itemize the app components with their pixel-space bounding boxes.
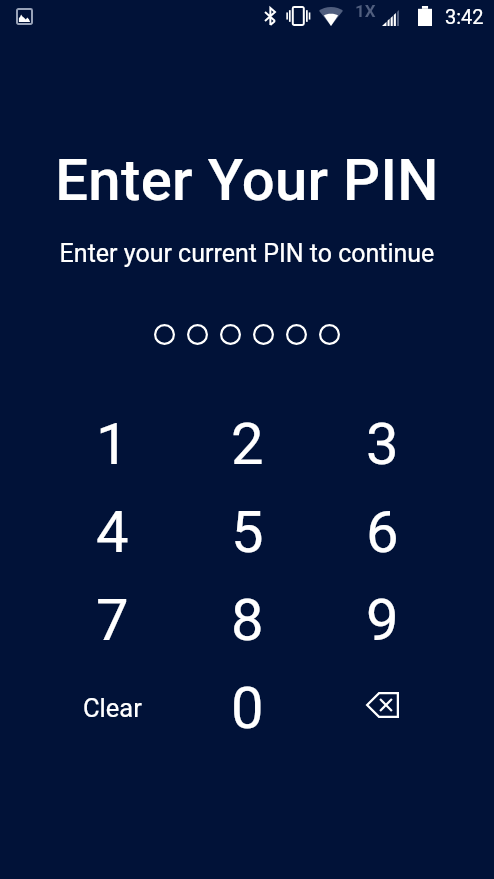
staticText: Enter Your PIN	[0, 146, 494, 214]
staticText: Clear	[83, 693, 142, 723]
staticText: Enter your current PIN to continue	[0, 239, 494, 268]
button[interactable]: 7	[44, 576, 180, 664]
staticText: 5	[231, 498, 264, 566]
staticText: 3	[366, 410, 399, 478]
staticText: 1	[96, 410, 129, 478]
staticText: 8	[231, 586, 264, 654]
staticText: 2	[231, 410, 264, 478]
staticText: 6	[366, 498, 399, 566]
button[interactable]: 9	[315, 576, 450, 664]
button[interactable]: 2	[180, 400, 315, 488]
button[interactable]: Clear	[44, 664, 180, 752]
other: Screenshot	[16, 8, 33, 25]
staticText: 3:42	[445, 5, 484, 28]
button[interactable]: 8	[180, 576, 315, 664]
staticText: 0	[231, 674, 264, 742]
button[interactable]: 6	[315, 488, 450, 576]
button[interactable]: 5	[180, 488, 315, 576]
staticText: 9	[366, 586, 399, 654]
staticText: 7	[96, 586, 129, 654]
button[interactable]: 0	[180, 664, 315, 752]
button[interactable]: Backspace	[315, 664, 450, 752]
staticText: 1X	[355, 1, 376, 21]
button[interactable]: 4	[44, 488, 180, 576]
button[interactable]: 1	[44, 400, 180, 488]
button[interactable]: 3	[315, 400, 450, 488]
staticText: 4	[96, 498, 129, 566]
